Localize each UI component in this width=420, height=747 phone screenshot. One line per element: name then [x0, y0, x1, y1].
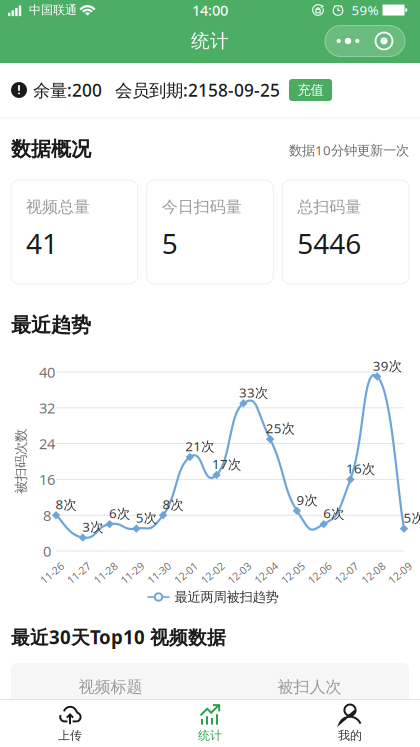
staticText: 5次 — [136, 509, 157, 526]
button[interactable]: 上传 — [15, 702, 125, 744]
staticText: 12-02 — [199, 566, 226, 580]
staticText: 余量:200 — [33, 78, 102, 101]
staticText: 12-03 — [226, 566, 253, 580]
staticText: 16次 — [346, 459, 375, 477]
staticText: 5446 — [297, 225, 361, 262]
staticText: 6次 — [109, 504, 130, 522]
staticText: 上传 — [58, 728, 82, 743]
staticText: 32 — [39, 398, 55, 418]
staticText: 统计 — [191, 29, 229, 52]
staticText: 12-04 — [253, 566, 280, 580]
staticText: 最近两周被扫趋势 — [174, 589, 278, 605]
staticText: 被扫人次 — [277, 677, 341, 697]
staticText: 被扫码次数 — [0, 453, 53, 470]
staticText: 会员到期:2158-09-25 — [115, 78, 280, 101]
staticText: 5次 — [403, 509, 420, 526]
staticText: 今日扫码量 — [162, 197, 242, 217]
staticText: 12-09 — [386, 566, 413, 580]
staticText: 11-28 — [92, 566, 119, 580]
staticText: 21次 — [185, 437, 214, 455]
staticText: 33次 — [239, 383, 268, 401]
staticText: 9次 — [296, 491, 317, 509]
staticText: 17次 — [212, 455, 241, 473]
staticText: 14:00 — [192, 0, 228, 20]
staticText: 视频总量 — [26, 197, 90, 217]
staticText: 充值 — [297, 82, 323, 98]
staticText: 我的 — [338, 728, 362, 743]
staticText: 11-30 — [146, 566, 173, 580]
staticText: 数据10分钟更新一次 — [289, 141, 409, 159]
staticText: 12-01 — [172, 566, 199, 580]
staticText: 8次 — [163, 495, 184, 513]
staticText: 40 — [39, 362, 55, 382]
staticText: 16 — [39, 470, 55, 489]
button[interactable]: 充值 — [289, 79, 332, 101]
staticText: 12-06 — [306, 566, 333, 580]
staticText: 12-08 — [360, 566, 387, 580]
staticText: 数据概况 — [11, 137, 91, 161]
button[interactable]: Mini program menu — [325, 25, 405, 56]
staticText: 25次 — [266, 419, 295, 437]
staticText: 11-29 — [119, 566, 146, 580]
staticText: 11-27 — [65, 566, 92, 580]
staticText: 6次 — [323, 504, 344, 522]
staticText: 统计 — [198, 728, 222, 743]
staticText: 24 — [39, 434, 55, 453]
staticText: 41 — [26, 225, 58, 262]
staticText: 5 — [162, 225, 178, 262]
staticText: 12-05 — [279, 566, 306, 580]
staticText: 3次 — [82, 518, 103, 535]
staticText: 8 — [43, 505, 51, 525]
staticText: 最近趋势 — [11, 313, 91, 337]
button[interactable]: 统计 — [155, 702, 265, 744]
staticText: 0 — [43, 541, 51, 561]
staticText: 12-07 — [333, 566, 360, 580]
staticText: 视频标题 — [78, 677, 142, 697]
staticText: 59% — [351, 1, 378, 19]
staticText: 8次 — [55, 495, 76, 513]
staticText: 最近30天Top10 视频数据 — [11, 625, 226, 649]
staticText: 中国联通 — [29, 3, 77, 17]
staticText: 39次 — [373, 357, 402, 374]
button[interactable]: 我的 — [295, 702, 405, 744]
staticText: 总扫码量 — [297, 197, 361, 217]
staticText: 11-26 — [38, 566, 65, 580]
